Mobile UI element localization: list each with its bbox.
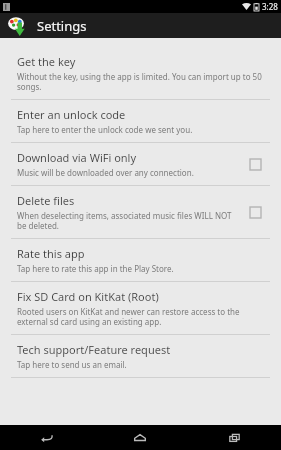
button[interactable]: Recents: [187, 425, 281, 450]
staticText: Tap here to send us an email.: [17, 359, 127, 370]
button[interactable]: Home: [93, 425, 187, 450]
staticText: Settings: [37, 17, 87, 35]
button[interactable]: Download via WiFi only: [250, 159, 261, 170]
button[interactable]: Fix SD Card on KitKat (Root): [0, 282, 281, 334]
other: App icon: [7, 15, 29, 37]
button[interactable]: Tech support/Feature request: [0, 335, 281, 377]
staticText: Delete files: [17, 193, 75, 208]
staticText: Rate this app: [17, 246, 85, 261]
staticText: Without the key, using the app is limite…: [17, 71, 271, 92]
staticText: Tap here to rate this app in the Play St…: [17, 263, 174, 274]
staticText: Get the key: [17, 54, 76, 69]
staticText: Tap here to enter the unlock code we sen…: [17, 124, 193, 135]
button[interactable]: Get the key: [0, 47, 281, 99]
staticText: Tech support/Feature request: [17, 342, 171, 357]
staticText: Download via WiFi only: [17, 150, 137, 165]
staticText: Enter an unlock code: [17, 107, 126, 122]
staticText: Fix SD Card on KitKat (Root): [17, 289, 159, 304]
button[interactable]: Back: [0, 425, 93, 450]
staticText: 3:28: [262, 1, 278, 12]
button[interactable]: Delete files: [0, 186, 281, 238]
staticText: When deselecting items, associated music…: [17, 210, 242, 231]
button[interactable]: Enter an unlock code: [0, 100, 281, 142]
button[interactable]: Rate this app: [0, 239, 281, 281]
staticText: Music will be downloaded over any connec…: [17, 167, 194, 178]
button[interactable]: Delete files: [250, 207, 261, 218]
button[interactable]: Download via WiFi only: [0, 143, 281, 185]
staticText: Rooted users on KitKat and newer can res…: [17, 306, 271, 327]
